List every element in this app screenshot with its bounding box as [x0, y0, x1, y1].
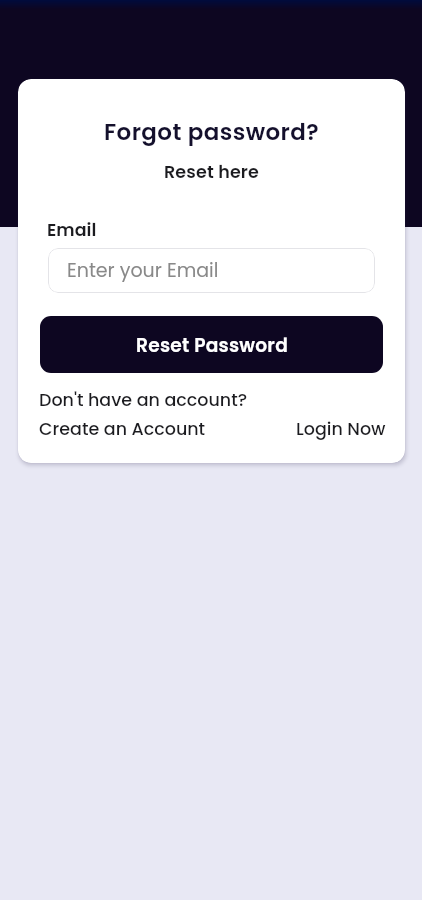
staticText: Don't have an account? [39, 388, 248, 413]
button[interactable]: Don't have an account? [39, 386, 248, 415]
button[interactable]: Enter your Email [48, 248, 375, 293]
staticText: Enter your Email [67, 257, 219, 284]
button[interactable]: Reset Password [40, 316, 383, 373]
staticText: Reset here [18, 160, 405, 185]
button[interactable]: Create an Account [39, 415, 206, 444]
button[interactable]: Login Now [296, 415, 386, 444]
staticText: Reset Password [136, 332, 288, 358]
staticText: Login Now [296, 417, 386, 442]
staticText: Email [47, 218, 97, 243]
staticText: Forgot password? [18, 116, 405, 148]
staticText: Create an Account [39, 417, 206, 442]
